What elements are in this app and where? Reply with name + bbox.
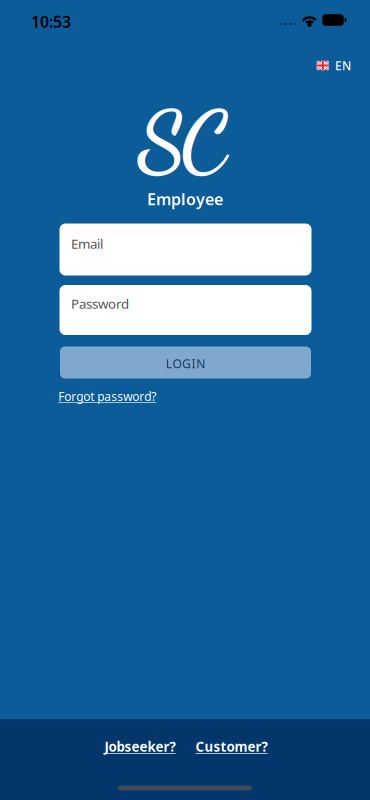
button[interactable]: Customer? bbox=[195, 738, 267, 755]
staticText: Forgot password? bbox=[58, 388, 156, 404]
staticText: Employee bbox=[147, 188, 223, 210]
button[interactable]: LOGIN bbox=[60, 346, 311, 378]
staticText: Jobseeker? bbox=[104, 738, 175, 755]
staticText: 10:53 bbox=[31, 11, 71, 32]
staticText: Email bbox=[71, 235, 103, 252]
button[interactable]: Language: English bbox=[317, 57, 351, 73]
button[interactable]: Password bbox=[59, 285, 311, 335]
staticText: Customer? bbox=[195, 738, 267, 755]
button[interactable]: Forgot password? bbox=[58, 388, 156, 404]
staticText: Password bbox=[71, 295, 129, 312]
staticText: EN bbox=[335, 57, 351, 73]
button[interactable]: Jobseeker? bbox=[104, 738, 175, 755]
button[interactable]: Email bbox=[59, 223, 311, 275]
staticText: SC bbox=[137, 91, 229, 193]
staticText: LOGIN bbox=[166, 356, 205, 372]
